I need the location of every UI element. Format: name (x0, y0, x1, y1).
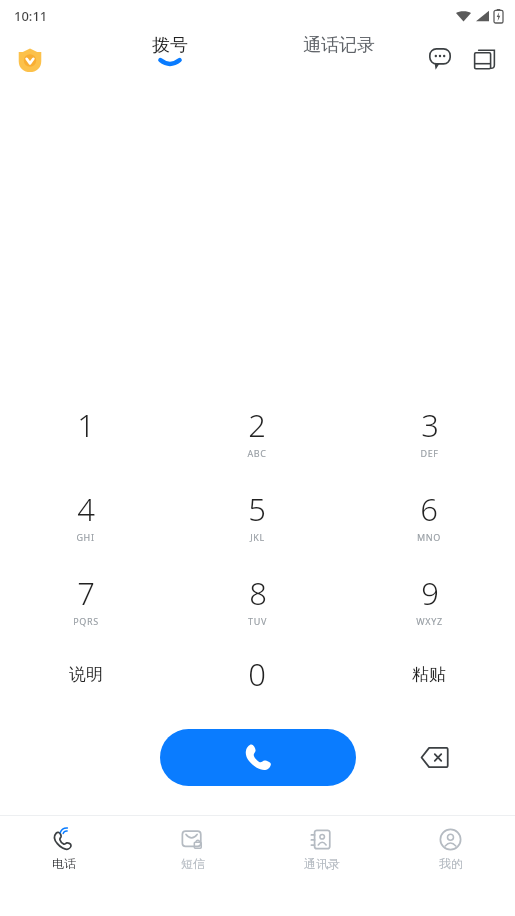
button[interactable]: Messages (421, 40, 459, 78)
button[interactable]: 拨号 (128, 34, 212, 78)
button[interactable]: Call (160, 729, 356, 786)
button[interactable]: 9 (343, 557, 515, 641)
button[interactable]: 短信 (128, 816, 257, 916)
staticText: 粘贴 (412, 664, 446, 685)
staticText: GHI (76, 531, 95, 543)
staticText: 7 (77, 572, 95, 614)
staticText: 10:11 (14, 7, 48, 25)
button[interactable]: 0 (171, 641, 343, 719)
staticText: 电话 (52, 856, 76, 871)
staticText: PQRS (73, 615, 99, 627)
staticText: 说明 (69, 664, 103, 685)
staticText: ABC (247, 447, 267, 459)
staticText: TUV (248, 615, 267, 627)
staticText: 短信 (181, 856, 205, 871)
staticText: 8 (249, 572, 267, 614)
staticText: MNO (417, 531, 441, 543)
staticText: 3 (421, 404, 439, 446)
staticText: 4 (77, 488, 95, 530)
button[interactable]: 说明 (0, 641, 171, 719)
staticText: 通讯录 (304, 856, 340, 871)
staticText: 2 (248, 404, 266, 446)
button[interactable]: 我的 (386, 816, 515, 916)
staticText: DEF (420, 447, 439, 459)
button[interactable]: 7 (0, 557, 171, 641)
staticText: 拨号 (152, 34, 188, 57)
button[interactable]: Backspace (406, 729, 463, 786)
button[interactable]: 通话记录 (286, 34, 392, 78)
staticText: WXYZ (416, 615, 443, 627)
staticText: 6 (420, 488, 438, 530)
staticText: 0 (248, 653, 266, 695)
button[interactable]: 8 (171, 557, 343, 641)
button[interactable]: Yellow pages (465, 40, 503, 78)
button[interactable]: 4 (0, 473, 171, 557)
button[interactable]: Harassment blocking (10, 40, 50, 80)
button[interactable]: 3 (343, 389, 515, 473)
button[interactable]: 通讯录 (257, 816, 386, 916)
button[interactable]: 2 (171, 389, 343, 473)
staticText: JKL (250, 531, 265, 543)
staticText: 9 (421, 572, 439, 614)
staticText: 1 (77, 404, 95, 446)
button[interactable]: 粘贴 (343, 641, 515, 719)
button[interactable]: 1 (0, 389, 171, 473)
staticText: 通话记录 (303, 34, 375, 57)
button[interactable]: 6 (343, 473, 515, 557)
staticText: 5 (248, 488, 266, 530)
staticText: 我的 (439, 856, 463, 871)
button[interactable]: 5 (171, 473, 343, 557)
button[interactable]: 电话 (0, 816, 128, 916)
